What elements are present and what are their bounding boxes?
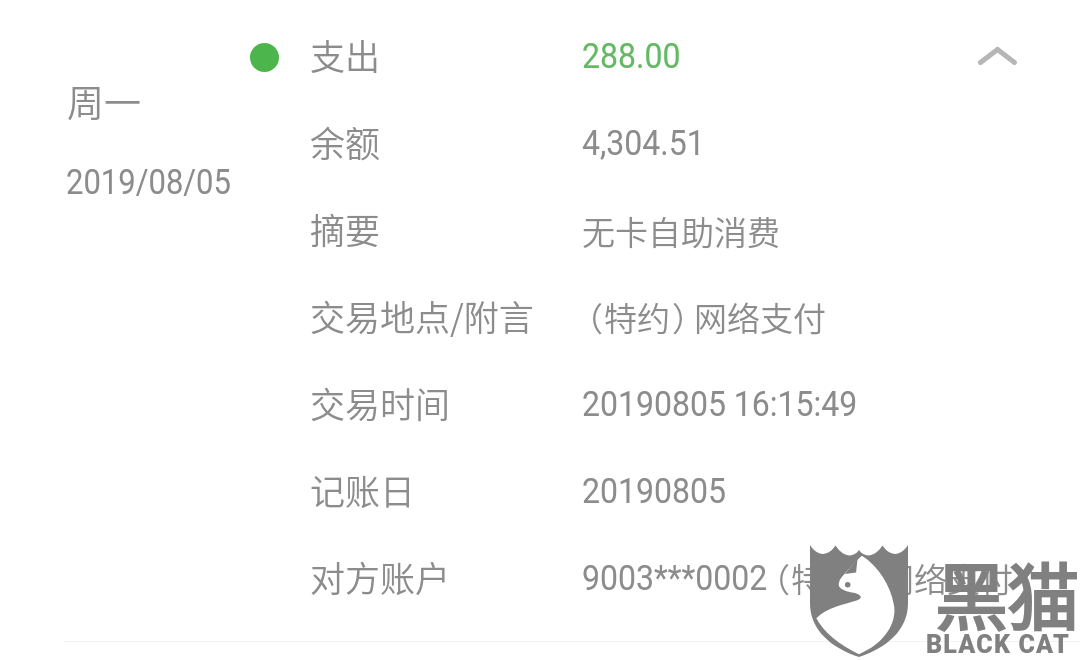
staticText: 特约 <box>791 554 857 602</box>
staticText: 20190805 <box>582 469 726 512</box>
staticText: 余额 <box>310 116 381 167</box>
button[interactable] <box>236 362 1036 449</box>
staticText: 记账日 <box>310 464 416 515</box>
button[interactable] <box>236 536 1036 623</box>
button[interactable] <box>236 449 1036 536</box>
staticText: 交易时间 <box>310 377 451 428</box>
staticText: 288.00 <box>582 34 681 77</box>
button[interactable] <box>236 275 1036 362</box>
staticText: 无卡自助消费 <box>582 207 780 255</box>
staticText: 周一 <box>67 74 141 128</box>
staticText: 对方账户 <box>310 551 451 602</box>
button[interactable]: 支出 <box>236 14 936 100</box>
staticText: 支出 <box>310 29 381 80</box>
button[interactable]: Collapse transaction details <box>957 16 1037 96</box>
staticText: 特约 <box>604 293 670 341</box>
button[interactable]: 周一 <box>20 55 240 225</box>
staticText: （ <box>757 554 790 602</box>
staticText: （ <box>570 293 603 341</box>
staticText: BLACK CAT <box>926 630 1070 659</box>
button[interactable] <box>236 188 1036 275</box>
staticText: 4,304.51 <box>582 121 705 164</box>
staticText: ） <box>859 554 892 602</box>
staticText: 9003***0002 <box>582 556 768 599</box>
staticText: 黑猫 <box>934 541 1079 645</box>
staticText: 网络支付 <box>694 293 826 341</box>
staticText: 摘要 <box>310 203 381 254</box>
staticText: 网络支付 <box>881 554 1013 602</box>
staticText: 交易地点/附言 <box>310 290 534 341</box>
staticText: 20190805 16:15:49 <box>582 382 858 425</box>
button[interactable] <box>236 101 1036 188</box>
staticText: ） <box>672 293 705 341</box>
staticText: 2019/08/05 <box>66 162 231 202</box>
